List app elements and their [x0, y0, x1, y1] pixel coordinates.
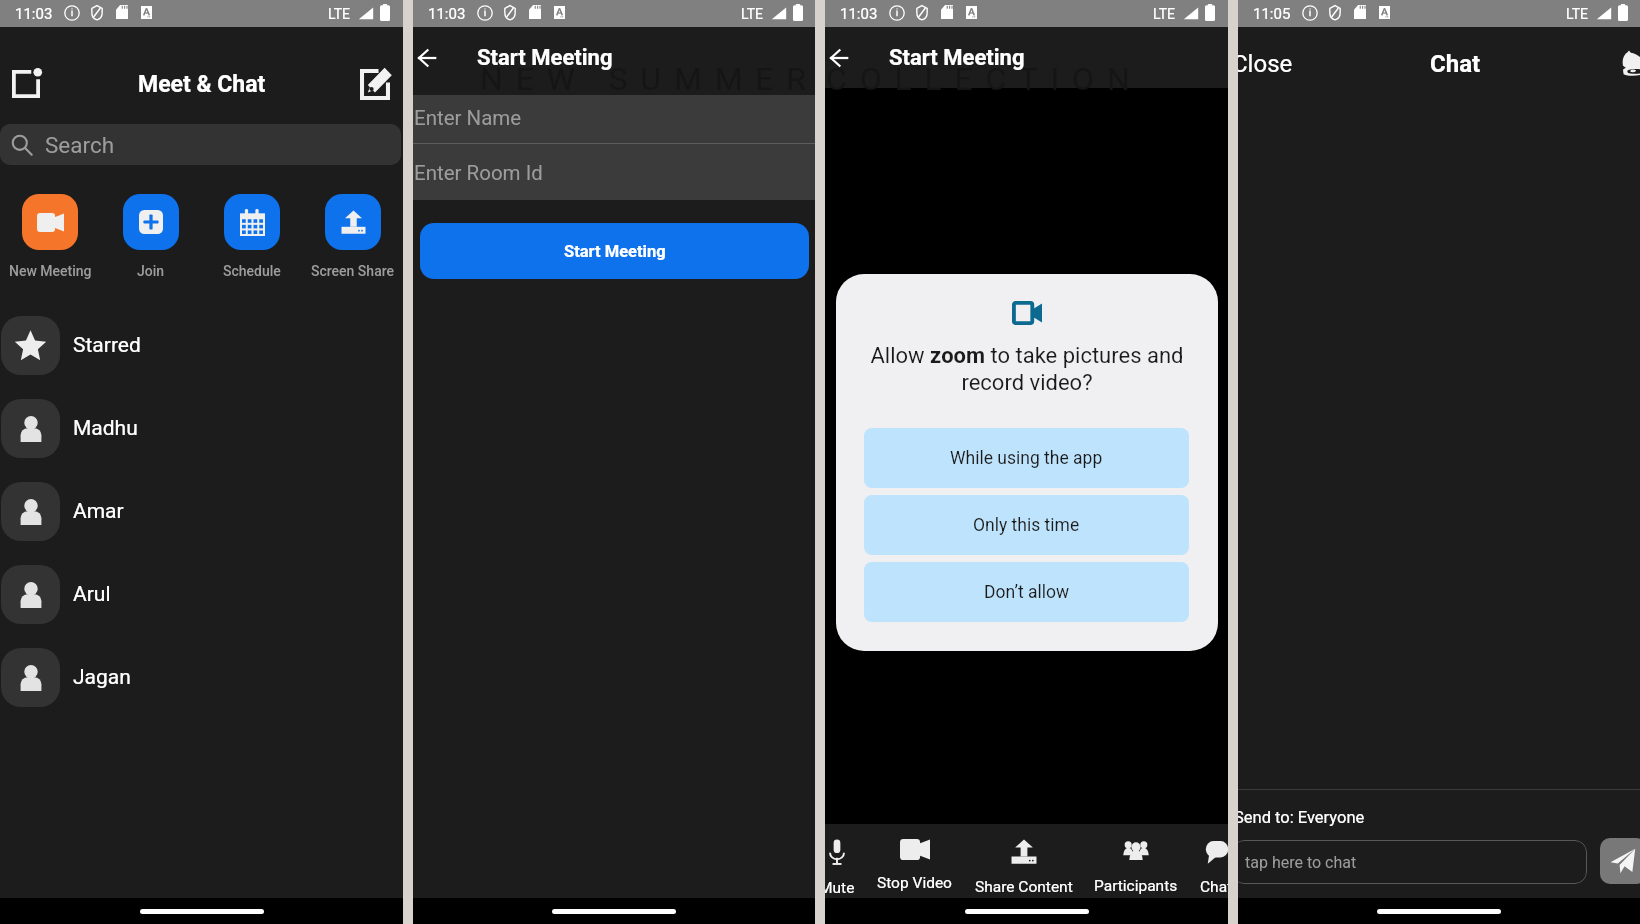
staticText: Start Meeting: [889, 45, 1025, 71]
button[interactable]: tap here to chat: [1238, 840, 1587, 884]
button[interactable]: Share Content: [975, 824, 1073, 896]
button[interactable]: Enter Room Id: [413, 144, 815, 200]
staticText: LTE: [1566, 6, 1588, 22]
staticText: Arul: [73, 582, 111, 607]
staticText: 11:03: [15, 5, 53, 23]
staticText: Mute: [825, 879, 855, 897]
staticText: Participants: [1094, 877, 1178, 895]
staticText: Enter Name: [414, 106, 522, 130]
button[interactable]: While using the app: [864, 428, 1189, 488]
button[interactable]: Arul: [0, 553, 403, 636]
button[interactable]: Chat: [1200, 824, 1228, 896]
button[interactable]: Send: [1600, 838, 1640, 884]
button[interactable]: Only this time: [864, 495, 1189, 555]
button[interactable]: Participants: [1094, 824, 1178, 895]
staticText: Chat: [1430, 50, 1481, 78]
button[interactable]: Back: [825, 36, 861, 80]
button[interactable]: Enter Name: [413, 95, 815, 143]
staticText: tap here to chat: [1245, 853, 1357, 872]
staticText: Enter Room Id: [414, 161, 543, 185]
button[interactable]: Screen Share: [302, 194, 403, 279]
button[interactable]: Notifications: [4, 62, 48, 106]
staticText: NEW SUMMER: [480, 60, 815, 98]
staticText: Chat: [1200, 878, 1228, 896]
button[interactable]: Mute: [825, 824, 855, 897]
staticText: Search: [45, 132, 115, 158]
button[interactable]: Starred: [0, 304, 403, 387]
button[interactable]: Jagan: [0, 636, 403, 719]
staticText: Madhu: [73, 416, 138, 441]
staticText: LTE: [741, 6, 763, 22]
staticText: 11:05: [1253, 5, 1291, 23]
staticText: Screen Share: [311, 263, 394, 279]
button[interactable]: Compose: [353, 62, 397, 106]
staticText: Amar: [73, 499, 124, 524]
staticText: Send to: Everyone: [1238, 808, 1365, 827]
staticText: Jagan: [73, 665, 131, 690]
button[interactable]: Schedule: [201, 194, 302, 279]
staticText: Share Content: [975, 878, 1073, 896]
staticText: Meet & Chat: [138, 71, 266, 98]
staticText: Don’t allow: [984, 582, 1070, 603]
button[interactable]: Search: [0, 124, 401, 165]
staticText: Only this time: [973, 515, 1080, 536]
staticText: Starred: [73, 333, 141, 358]
staticText: LTE: [1153, 6, 1175, 22]
staticText: LTE: [328, 6, 350, 22]
staticText: Start Meeting: [564, 242, 666, 261]
button[interactable]: Close: [1238, 50, 1293, 78]
button[interactable]: Back: [413, 36, 449, 80]
button[interactable]: Madhu: [0, 387, 403, 470]
staticText: Schedule: [223, 263, 281, 279]
staticText: While using the app: [950, 448, 1103, 469]
staticText: 11:03: [840, 5, 878, 23]
staticText: 11:03: [428, 5, 466, 23]
button[interactable]: Amar: [0, 470, 403, 553]
staticText: Start Meeting: [477, 45, 613, 71]
button[interactable]: Start Meeting: [420, 223, 809, 279]
button[interactable]: Don’t allow: [864, 562, 1189, 622]
button[interactable]: Stop Video: [877, 824, 952, 892]
staticText: New Meeting: [9, 263, 92, 279]
staticText: COLLECTION: [826, 60, 1143, 98]
staticText: Stop Video: [877, 874, 952, 892]
button[interactable]: Join: [100, 194, 201, 279]
staticText: Allow zoom to take pictures and record v…: [856, 343, 1198, 395]
button[interactable]: Notifications: [1611, 42, 1640, 84]
button[interactable]: New Meeting: [0, 194, 100, 279]
staticText: Join: [137, 263, 165, 279]
